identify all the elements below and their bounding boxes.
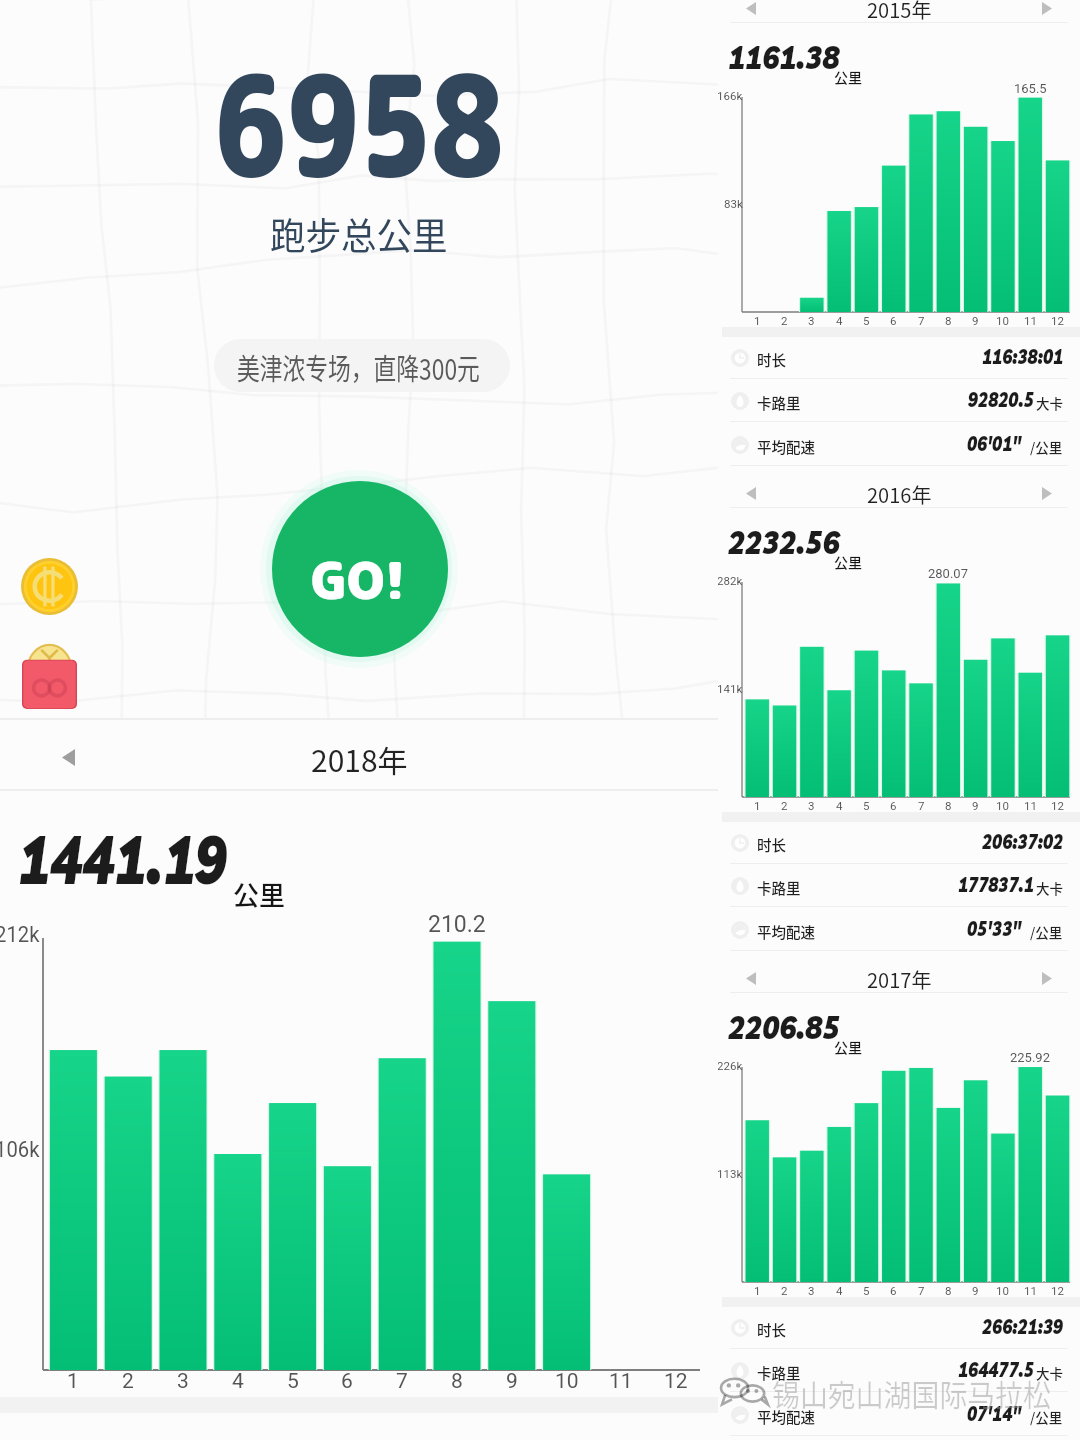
staticText: 12 <box>1051 1284 1064 1297</box>
staticText: 9 <box>972 314 979 327</box>
button[interactable]: Coins reward <box>21 558 78 615</box>
staticText: 2 <box>781 1284 788 1297</box>
staticText: 2018年 <box>311 737 408 780</box>
staticText: /公里 <box>1030 1407 1063 1427</box>
staticText: 05'33" <box>967 916 1022 941</box>
staticText: 美津浓专场，直降300元 <box>237 346 480 388</box>
staticText: 210.2 <box>428 911 486 938</box>
staticText: 2016年 <box>867 480 932 509</box>
button[interactable] <box>718 956 1080 992</box>
staticText: 2232.56 <box>728 522 840 562</box>
staticText: 07'14" <box>967 1401 1022 1426</box>
staticText: 1 <box>67 1369 79 1394</box>
staticText: 4 <box>232 1369 244 1394</box>
button[interactable] <box>718 471 1080 507</box>
button[interactable] <box>718 423 1080 466</box>
staticText: 12 <box>1051 314 1064 327</box>
staticText: 1 <box>754 1284 761 1297</box>
staticText: 大卡 <box>1036 393 1063 413</box>
button[interactable] <box>718 336 1080 379</box>
staticText: 6 <box>890 1284 897 1297</box>
staticText: 106k <box>0 1137 40 1163</box>
staticText: 2 <box>781 799 788 812</box>
staticText: 12 <box>664 1369 688 1394</box>
staticText: /公里 <box>1030 922 1063 942</box>
button[interactable] <box>718 1306 1080 1349</box>
staticText: 9 <box>972 1284 979 1297</box>
staticText: 166k <box>718 89 743 102</box>
staticText: 9 <box>506 1369 518 1394</box>
staticText: 公里 <box>834 552 862 572</box>
staticText: 11 <box>1024 314 1037 327</box>
staticText: 锡山宛山湖国际马拉松 <box>772 1371 1051 1414</box>
staticText: 12 <box>1051 799 1064 812</box>
staticText: 266:21:39 <box>982 1314 1063 1339</box>
staticText: 6 <box>890 799 897 812</box>
staticText: 跑步总公里 <box>270 207 448 261</box>
staticText: 平均配速 <box>757 1406 815 1427</box>
staticText: 时长 <box>757 1319 786 1340</box>
button[interactable] <box>718 1349 1080 1392</box>
staticText: 3 <box>177 1369 189 1394</box>
staticText: 5 <box>863 314 870 327</box>
staticText: /公里 <box>1030 437 1063 457</box>
staticText: 时长 <box>757 349 786 370</box>
staticText: GO! <box>311 544 407 615</box>
staticText: 141k <box>718 682 743 695</box>
staticText: 10 <box>996 314 1009 327</box>
staticText: 10 <box>996 799 1009 812</box>
button[interactable]: Red packet reward <box>22 641 77 709</box>
staticText: 212k <box>0 922 40 948</box>
staticText: 时长 <box>757 834 786 855</box>
staticText: 1441.19 <box>18 818 228 901</box>
button[interactable] <box>214 339 510 392</box>
staticText: 06'01" <box>967 431 1022 456</box>
staticText: 4 <box>836 314 843 327</box>
staticText: 卡路里 <box>757 392 801 413</box>
staticText: 7 <box>396 1369 408 1394</box>
staticText: 2017年 <box>867 965 932 994</box>
staticText: 2 <box>781 314 788 327</box>
staticText: 3 <box>808 314 815 327</box>
staticText: 9 <box>972 799 979 812</box>
staticText: 1 <box>754 799 761 812</box>
staticText: 83k <box>724 197 743 210</box>
staticText: 226k <box>718 1059 743 1072</box>
staticText: 10 <box>555 1369 579 1394</box>
staticText: 平均配速 <box>757 436 815 457</box>
staticText: 1 <box>754 314 761 327</box>
staticText: 大卡 <box>1036 878 1063 898</box>
staticText: 1161.38 <box>728 37 840 77</box>
staticText: 6 <box>890 314 897 327</box>
staticText: 卡路里 <box>757 1362 801 1383</box>
button[interactable] <box>0 720 718 789</box>
staticText: 大卡 <box>1036 1363 1063 1383</box>
button[interactable] <box>718 1393 1080 1436</box>
staticText: 177837.1 <box>958 872 1034 897</box>
button[interactable] <box>718 864 1080 907</box>
staticText: 206:37:02 <box>982 829 1063 854</box>
staticText: 10 <box>996 1284 1009 1297</box>
staticText: 8 <box>451 1369 463 1394</box>
staticText: 4 <box>836 799 843 812</box>
staticText: 2 <box>122 1369 134 1394</box>
staticText: 280.07 <box>928 566 968 581</box>
staticText: 225.92 <box>1010 1050 1050 1065</box>
staticText: 8 <box>945 1284 952 1297</box>
staticText: 2015年 <box>867 0 932 24</box>
staticText: 5 <box>863 1284 870 1297</box>
button[interactable] <box>718 0 1080 22</box>
button[interactable] <box>718 908 1080 951</box>
staticText: 6958 <box>215 26 504 221</box>
button[interactable] <box>718 379 1080 422</box>
staticText: 3 <box>808 1284 815 1297</box>
staticText: 165.5 <box>1014 81 1047 96</box>
staticText: 7 <box>918 799 925 812</box>
button[interactable]: GO start running <box>272 481 448 657</box>
staticText: 282k <box>718 574 743 587</box>
staticText: 11 <box>609 1369 633 1394</box>
button[interactable] <box>718 821 1080 864</box>
staticText: 4 <box>836 1284 843 1297</box>
staticText: 3 <box>808 799 815 812</box>
staticText: 公里 <box>233 875 286 913</box>
